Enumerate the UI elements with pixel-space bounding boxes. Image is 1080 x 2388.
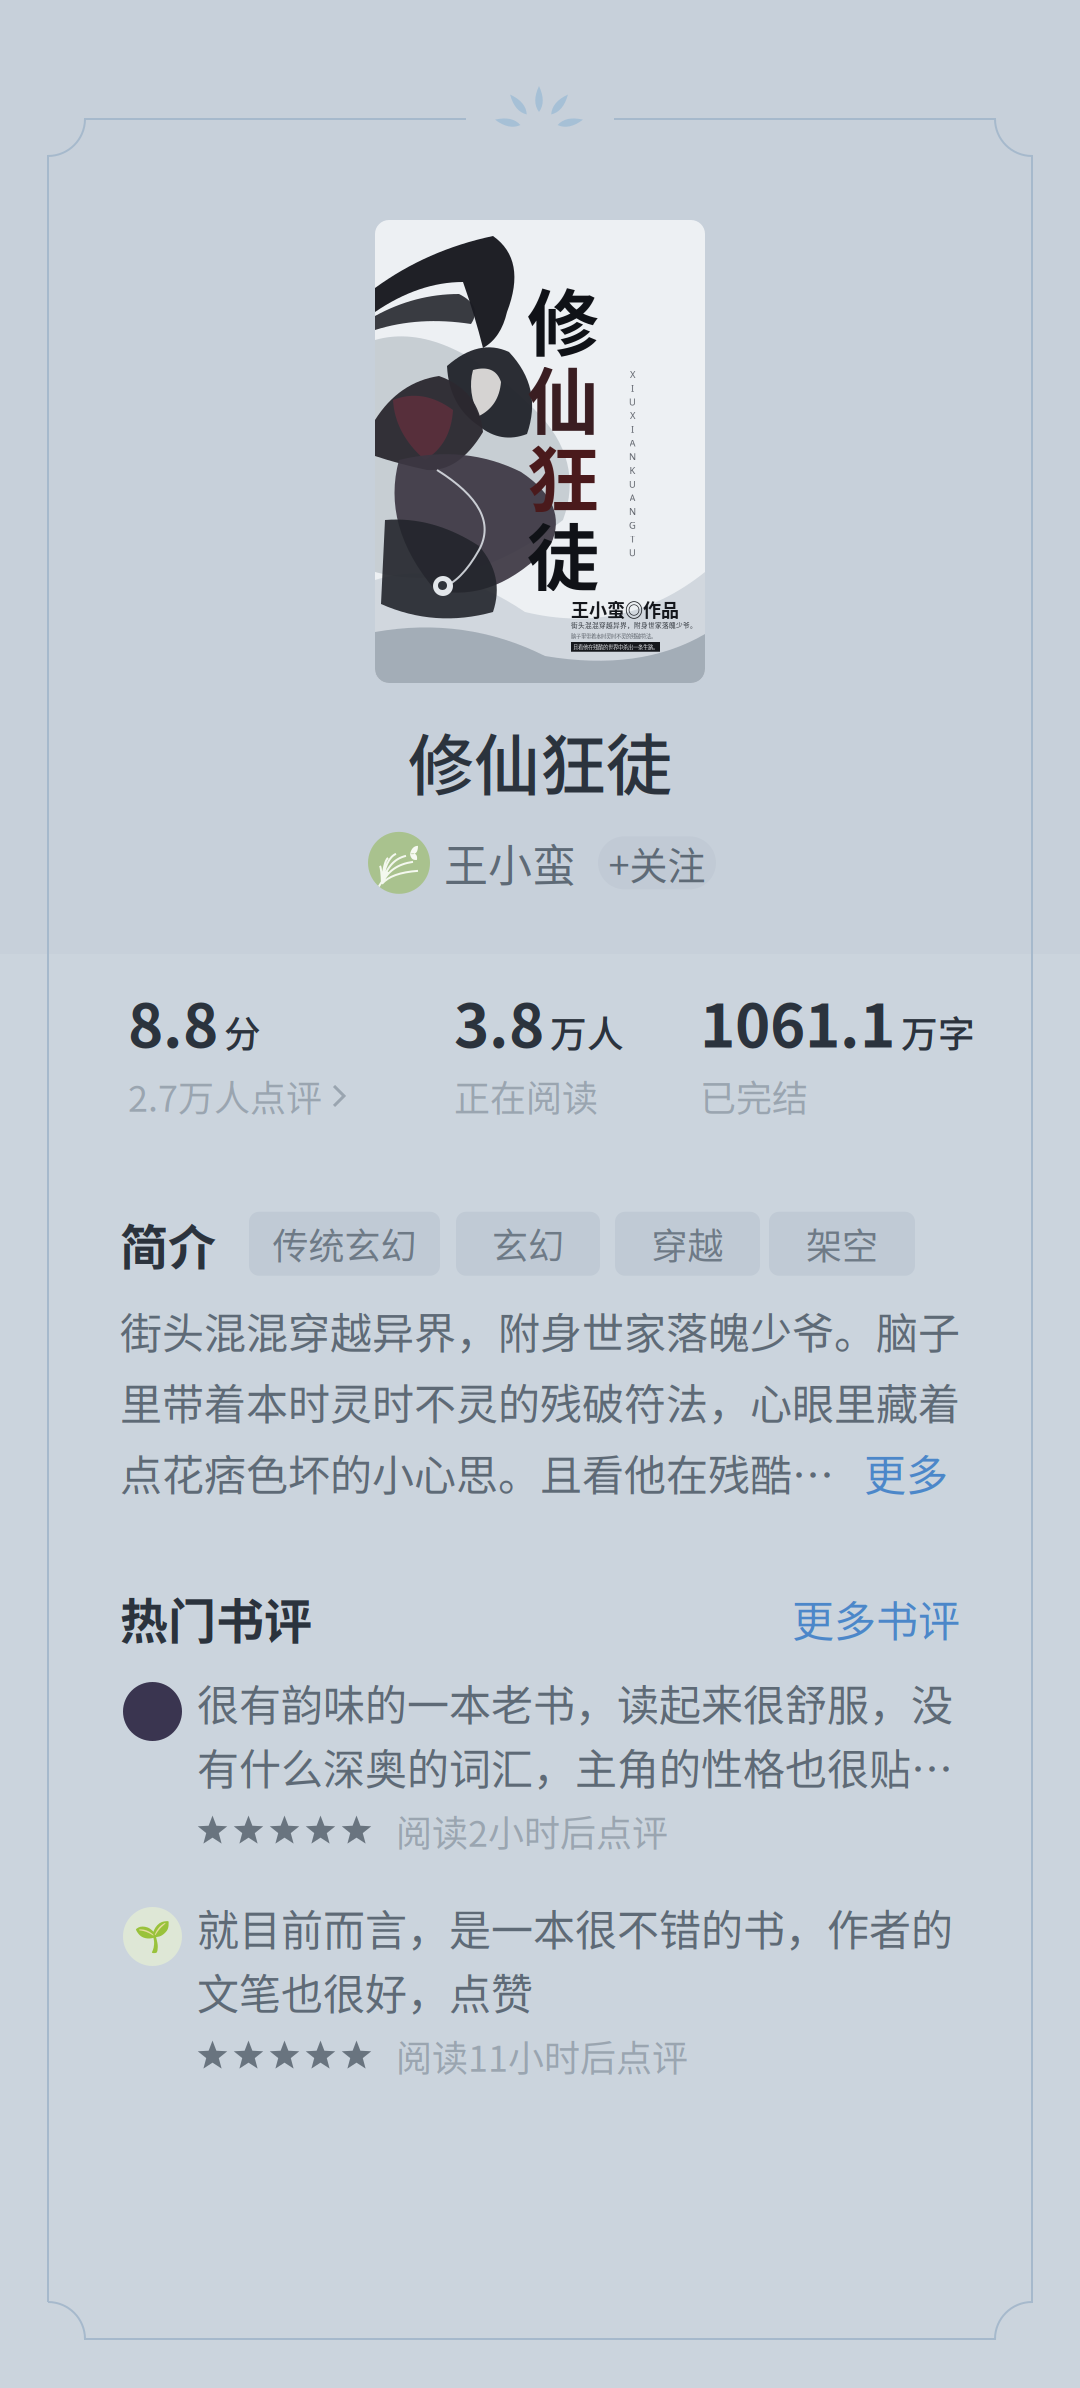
staticText: 有什么深奥的词汇，主角的性格也很贴… [197,1736,953,1797]
staticText: I [631,423,634,435]
staticText: 且看他在残酷的世界中杀出一条生路。 [573,643,658,651]
button[interactable]: 更多 [834,1442,948,1503]
staticText: 🌱 [134,1919,171,1954]
staticText: 更多书评 [792,1588,960,1649]
staticText: 脑子里带着本时灵时不灵的残破符法。 [571,632,656,640]
staticText: 8.8 [128,978,218,1065]
staticText: N [629,450,636,463]
staticText: 正在阅读 [454,1070,598,1122]
staticText: 徒 [527,501,599,605]
staticText: 就目前而言，是一本很不错的书，作者的 [197,1897,953,1958]
button[interactable]: 玄幻 [456,1212,600,1276]
staticText: 里带着本时灵时不灵的残破符法，心眼里藏着 [120,1371,960,1432]
staticText: A [629,437,635,449]
staticText: 修仙狂徒 [408,713,672,809]
staticText: 王小蛮◎作品 [571,596,679,622]
button[interactable]: 传统玄幻 [249,1212,440,1276]
staticText: X [630,409,635,422]
staticText: 街头混混穿越异界，附身世家落魄少爷。脑子 [120,1300,960,1361]
staticText: U [629,478,636,490]
staticText: X [630,368,635,381]
button[interactable]: +关注 [598,836,716,889]
staticText: 王小蛮 [444,831,576,895]
staticText: 万人 [550,1005,624,1058]
staticText: 3.8 [454,978,544,1065]
staticText: T [630,532,635,545]
staticText: U [629,546,636,559]
button[interactable]: 架空 [769,1212,915,1276]
staticText: N [629,505,636,518]
staticText: 分 [224,1005,261,1058]
staticText: K [629,464,635,477]
staticText: 仙 [527,344,599,449]
staticText: 热门书评 [120,1583,312,1652]
staticText: 修 [527,266,599,370]
button[interactable]: 穿越 [615,1212,760,1276]
staticText: U [629,395,636,408]
staticText: 街头混混穿越异界，附身世家落魄少爷。 [571,620,697,630]
staticText: 1061.1 [700,978,895,1065]
staticText: 万字 [901,1005,975,1058]
staticText: 更多 [864,1442,948,1503]
staticText: 穿越 [651,1218,723,1270]
button[interactable]: 更多书评 [792,1588,960,1649]
staticText: 点花痞色坏的小心思。且看他在残酷… [120,1442,834,1503]
staticText: 狂 [527,422,599,527]
staticText: 玄幻 [492,1218,564,1270]
staticText: I [631,382,634,394]
staticText: G [629,519,636,531]
staticText: 很有韵味的一本老书，读起来很舒服，没 [197,1672,953,1733]
staticText: 架空 [806,1218,878,1270]
staticText: 传统玄幻 [272,1218,416,1270]
staticText: 已完结 [700,1070,808,1122]
staticText: +关注 [608,835,705,890]
staticText: 2.7万人点评 [128,1070,322,1122]
staticText: 简介 [120,1209,216,1278]
staticText: 阅读2小时后点评 [396,1805,668,1857]
staticText: 阅读11小时后点评 [396,2030,688,2082]
staticText: A [629,491,635,504]
staticText: 文笔也很好，点赞 [197,1961,533,2022]
